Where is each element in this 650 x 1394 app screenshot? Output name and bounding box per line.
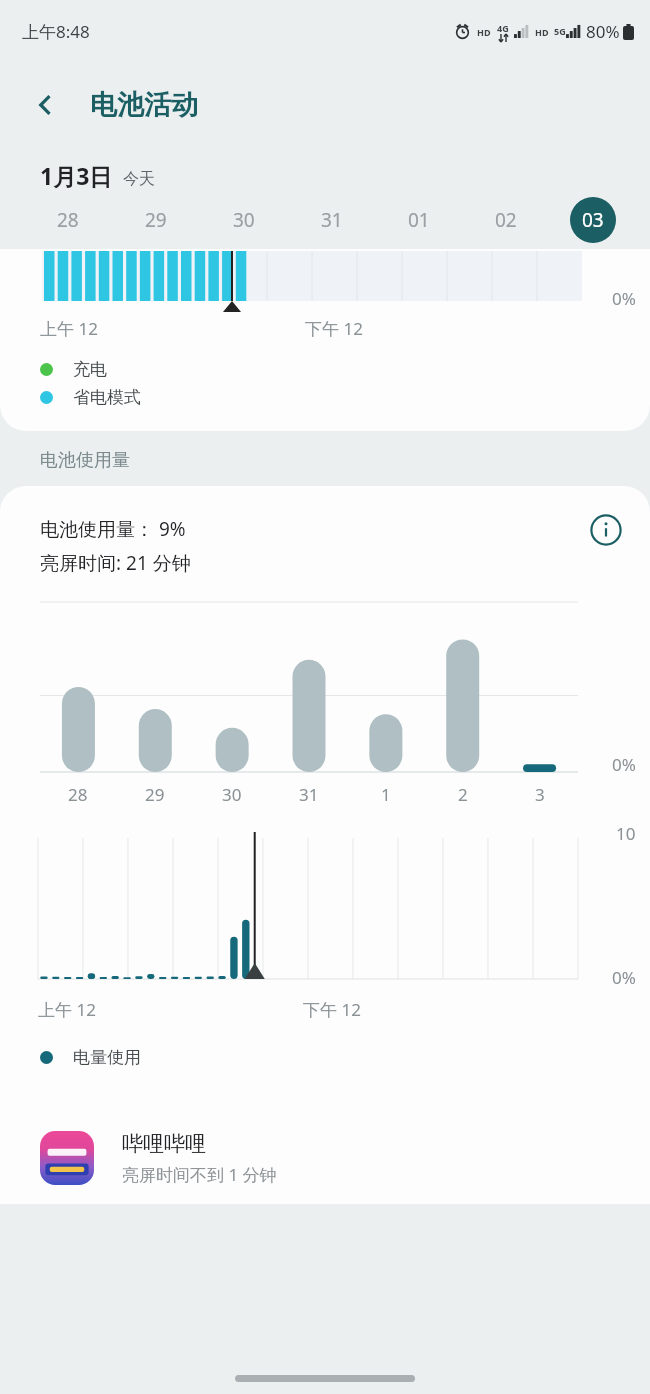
staticText: HD bbox=[535, 26, 549, 38]
staticText: 10 bbox=[616, 822, 636, 845]
staticText: 28 bbox=[68, 783, 88, 806]
staticText: 31 bbox=[321, 207, 343, 233]
button[interactable]: 03 bbox=[549, 197, 636, 243]
staticText: 01 bbox=[408, 207, 430, 233]
staticText: 30 bbox=[222, 783, 242, 806]
staticText: 29 bbox=[145, 783, 165, 806]
staticText: 5G bbox=[554, 25, 566, 37]
staticText: 下午 12 bbox=[303, 998, 361, 1021]
staticText: 充电 bbox=[73, 359, 107, 380]
staticText: 上午8:48 bbox=[22, 20, 90, 43]
staticText: 29 bbox=[145, 207, 167, 233]
button[interactable]: 31 bbox=[288, 197, 375, 243]
staticText: 省电模式 bbox=[73, 387, 141, 408]
staticText: 28 bbox=[57, 207, 79, 233]
staticText: 0% bbox=[612, 753, 636, 776]
staticText: 电池使用量 bbox=[40, 449, 130, 472]
staticText: HD bbox=[477, 26, 491, 38]
staticText: 30 bbox=[233, 207, 255, 233]
staticText: 电池活动 bbox=[90, 88, 198, 122]
staticText: 上午 12 bbox=[38, 998, 96, 1021]
staticText: 亮屏时间: 21 分钟 bbox=[40, 550, 191, 576]
staticText: 0% bbox=[612, 966, 636, 989]
staticText: 2 bbox=[458, 783, 468, 806]
button[interactable]: 01 bbox=[375, 197, 462, 243]
staticText: 3 bbox=[535, 783, 545, 806]
staticText: 02 bbox=[495, 207, 517, 233]
staticText: 31 bbox=[299, 783, 319, 806]
button[interactable]: 29 bbox=[112, 197, 200, 243]
staticText: 1 bbox=[381, 783, 391, 806]
staticText: 下午 12 bbox=[305, 317, 363, 340]
button[interactable]: 02 bbox=[462, 197, 549, 243]
staticText: 1月3日 bbox=[40, 160, 113, 191]
staticText: 电池使用量： 9% bbox=[40, 516, 186, 542]
button[interactable]: 30 bbox=[200, 197, 288, 243]
staticText: 电量使用 bbox=[73, 1047, 141, 1068]
staticText: 今天 bbox=[123, 169, 155, 189]
button[interactable]: Info bbox=[584, 508, 628, 552]
staticText: 哔哩哔哩 bbox=[122, 1131, 206, 1157]
button[interactable]: 哔哩哔哩 bbox=[0, 1112, 650, 1204]
button[interactable]: Back bbox=[22, 81, 70, 129]
staticText: 上午 12 bbox=[40, 317, 98, 340]
staticText: 80% bbox=[586, 20, 620, 43]
staticText: 4G bbox=[497, 22, 509, 34]
staticText: 亮屏时间不到 1 分钟 bbox=[122, 1163, 277, 1186]
staticText: 03 bbox=[582, 207, 604, 233]
button[interactable]: 28 bbox=[24, 197, 112, 243]
staticText: 0% bbox=[612, 287, 636, 310]
